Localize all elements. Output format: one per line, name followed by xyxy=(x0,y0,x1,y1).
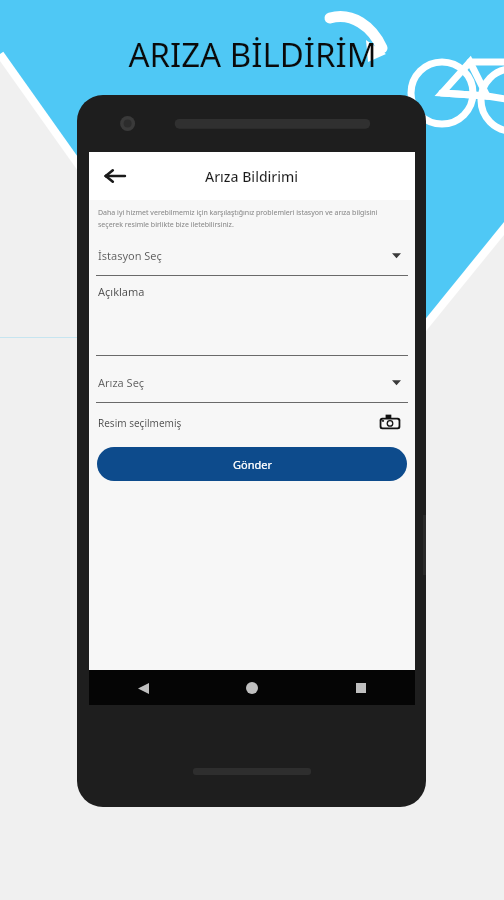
button[interactable]: Back xyxy=(95,156,135,196)
staticText: Gönder xyxy=(233,457,272,472)
button[interactable]: Gönder xyxy=(97,447,407,481)
staticText: Arıza Seç xyxy=(98,375,145,390)
button[interactable]: Resim seçilmemiş xyxy=(89,403,415,443)
button[interactable]: Recent apps xyxy=(344,671,378,705)
button[interactable]: Select picture xyxy=(377,410,403,436)
staticText: Resim seçilmemiş xyxy=(98,416,182,430)
button[interactable]: İstasyon Seç xyxy=(89,235,415,276)
staticText: ARIZA BİLDİRİM xyxy=(128,32,377,77)
button[interactable]: Back xyxy=(126,671,160,705)
staticText: İstasyon Seç xyxy=(98,248,162,263)
staticText: Daha iyi hizmet verebilmemiz için karşıl… xyxy=(98,208,399,229)
button[interactable]: Açıklama xyxy=(89,276,415,356)
button[interactable]: Arıza Seç xyxy=(89,362,415,403)
button[interactable]: Home xyxy=(235,671,269,705)
staticText: Açıklama xyxy=(98,284,145,299)
staticText: Arıza Bildirimi xyxy=(205,167,299,186)
